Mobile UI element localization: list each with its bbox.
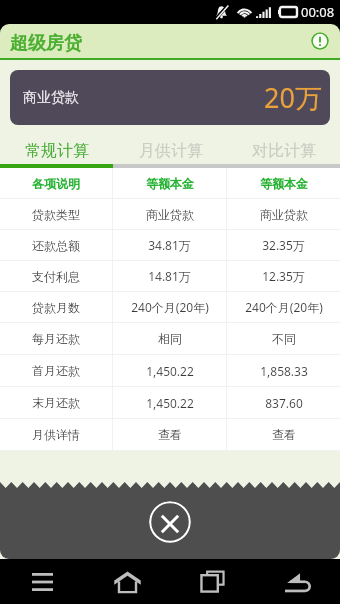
staticText: 240个月(20年): [245, 299, 323, 315]
button[interactable]: 首月还款: [0, 355, 112, 386]
staticText: 相同: [158, 331, 182, 346]
staticText: 月供详情: [32, 427, 80, 442]
button[interactable]: 末月还款: [0, 387, 112, 418]
button[interactable]: 贷款类型: [0, 199, 112, 229]
button[interactable]: 常规计算: [0, 125, 114, 164]
staticText: 查看: [272, 427, 296, 442]
staticText: 14.81万: [148, 268, 191, 284]
staticText: 还款总额: [32, 238, 80, 253]
button[interactable]: 240个月(20年): [227, 292, 340, 322]
staticText: 支付利息: [32, 269, 80, 284]
staticText: 首月还款: [32, 363, 80, 378]
button[interactable]: 837.60: [227, 387, 340, 418]
staticText: 1,858.33: [260, 363, 308, 379]
button[interactable]: 贷款月数: [0, 292, 112, 322]
button[interactable]: 支付利息: [0, 261, 112, 291]
button[interactable]: 等额本金: [227, 168, 340, 198]
staticText: 20万: [264, 79, 322, 116]
button[interactable]: 等额本金: [113, 168, 226, 198]
staticText: 等额本金: [260, 176, 308, 191]
staticText: 商业贷款: [260, 207, 308, 222]
staticText: 34.81万: [148, 237, 191, 253]
button[interactable]: 1,450.22: [113, 387, 226, 418]
staticText: 对比计算: [252, 141, 316, 161]
button[interactable]: 240个月(20年): [113, 292, 226, 322]
button[interactable]: 相同: [113, 323, 226, 354]
button[interactable]: 各项说明: [0, 168, 112, 198]
button[interactable]: 不同: [227, 323, 340, 354]
staticText: 超级房贷: [10, 32, 82, 55]
button[interactable]: Info: [311, 32, 329, 50]
staticText: 贷款月数: [32, 300, 80, 315]
staticText: 837.60: [265, 395, 303, 411]
staticText: 查看: [158, 427, 182, 442]
button[interactable]: 对比计算: [227, 125, 340, 164]
button[interactable]: 商业贷款: [227, 199, 340, 229]
button[interactable]: Close: [149, 501, 191, 543]
staticText: 12.35万: [262, 268, 305, 284]
button[interactable]: 还款总额: [0, 230, 112, 260]
button[interactable]: Home: [85, 559, 170, 604]
staticText: 1,450.22: [146, 363, 194, 379]
button[interactable]: Menu: [0, 559, 85, 604]
staticText: 等额本金: [146, 176, 194, 191]
staticText: 月供计算: [139, 141, 203, 161]
staticText: 00:08: [301, 3, 335, 21]
staticText: 240个月(20年): [131, 299, 209, 315]
button[interactable]: 每月还款: [0, 323, 112, 354]
staticText: 商业贷款: [23, 89, 79, 107]
button[interactable]: 查看: [227, 419, 340, 450]
button[interactable]: 14.81万: [113, 261, 226, 291]
button[interactable]: 查看: [113, 419, 226, 450]
button[interactable]: 34.81万: [113, 230, 226, 260]
staticText: 商业贷款: [146, 207, 194, 222]
staticText: 32.35万: [262, 237, 305, 253]
button[interactable]: 1,858.33: [227, 355, 340, 386]
staticText: 各项说明: [32, 176, 80, 191]
button[interactable]: Recents: [170, 559, 255, 604]
button[interactable]: Back: [255, 559, 340, 604]
staticText: 1,450.22: [146, 395, 194, 411]
button[interactable]: 32.35万: [227, 230, 340, 260]
staticText: 常规计算: [25, 141, 89, 161]
button[interactable]: 月供计算: [114, 125, 227, 164]
button[interactable]: 1,450.22: [113, 355, 226, 386]
staticText: 贷款类型: [32, 207, 80, 222]
staticText: 不同: [272, 331, 296, 346]
button[interactable]: 12.35万: [227, 261, 340, 291]
button[interactable]: 商业贷款: [10, 70, 330, 125]
staticText: 末月还款: [32, 395, 80, 410]
staticText: 每月还款: [32, 331, 80, 346]
button[interactable]: 商业贷款: [113, 199, 226, 229]
button[interactable]: 月供详情: [0, 419, 112, 450]
